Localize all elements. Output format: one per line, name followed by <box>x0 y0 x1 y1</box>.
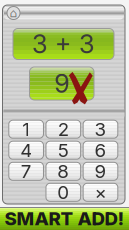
staticText: 1 <box>22 118 30 140</box>
staticText: 3 <box>94 118 106 140</box>
staticText: 7 <box>21 160 32 183</box>
button[interactable]: × <box>83 183 118 201</box>
staticText: 5 <box>58 139 69 161</box>
button[interactable]: 8 <box>46 162 81 180</box>
button[interactable]: 0 <box>46 183 81 201</box>
button[interactable]: 1 <box>9 120 43 138</box>
button[interactable]: 2 <box>46 120 81 138</box>
staticText: 9 <box>54 68 69 99</box>
button[interactable]: 6 <box>83 141 118 159</box>
staticText: 4 <box>20 139 32 161</box>
button[interactable]: 7 <box>9 162 43 180</box>
staticText: SMART ADD! <box>4 207 124 230</box>
staticText: 3 + 3 <box>32 29 95 59</box>
button[interactable]: SMART ADD! <box>0 207 129 230</box>
staticText: 0 <box>57 181 69 204</box>
staticText: 8 <box>57 160 69 183</box>
button[interactable]: 5 <box>46 141 81 159</box>
staticText: 2 <box>58 118 69 140</box>
staticText: × <box>94 181 106 204</box>
button[interactable]: 4 <box>9 141 43 159</box>
staticText: 6 <box>94 139 106 161</box>
button[interactable]: Home <box>6 6 20 20</box>
staticText: 9 <box>94 160 106 183</box>
button[interactable]: 3 <box>83 120 118 138</box>
staticText: ⌂ <box>9 6 17 20</box>
button[interactable]: 9 <box>83 162 118 180</box>
